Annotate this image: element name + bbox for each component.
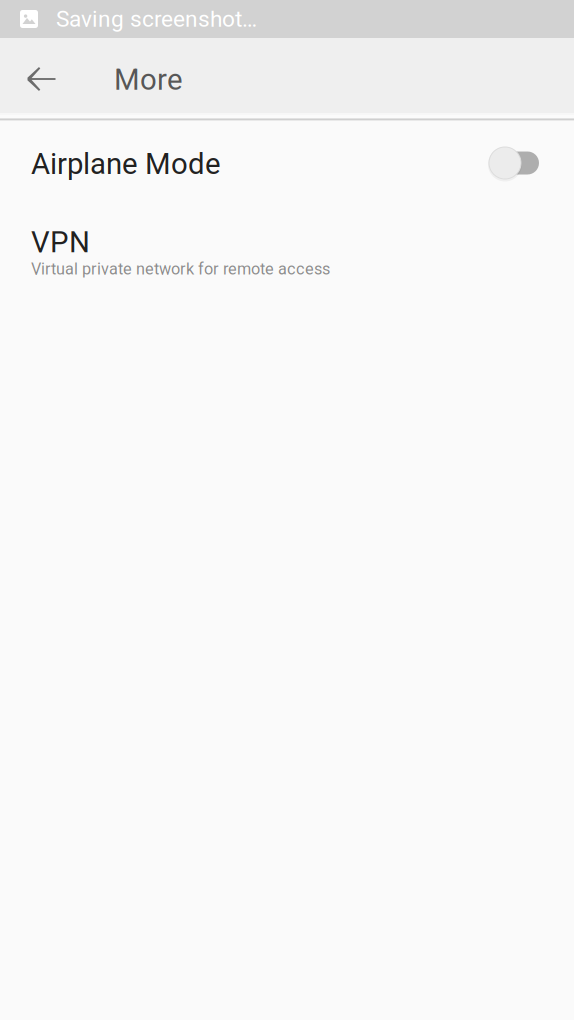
staticText: Virtual private network for remote acces… xyxy=(31,259,330,278)
staticText: Saving screenshot… xyxy=(56,6,257,32)
button[interactable]: Back xyxy=(0,47,70,103)
button[interactable]: VPN xyxy=(0,207,574,298)
button[interactable]: Airplane Mode xyxy=(0,121,574,207)
staticText: More xyxy=(114,62,183,97)
staticText: Airplane Mode xyxy=(31,147,221,181)
staticText: VPN xyxy=(31,225,90,259)
